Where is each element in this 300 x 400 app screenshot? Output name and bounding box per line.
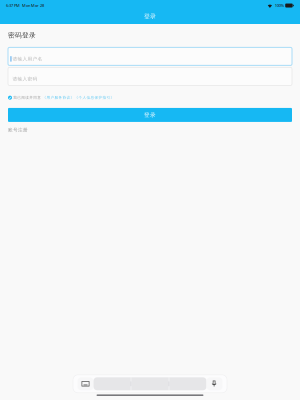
staticText: 登录 (144, 13, 156, 20)
button[interactable]: 我已阅读并同意 (0, 85, 300, 100)
staticText: 请输入密码 (12, 76, 37, 82)
staticText: 《用户服务协议》《个人信息保护指引》 (42, 95, 114, 100)
button[interactable]: 账号注册 (0, 122, 28, 133)
staticText: 密码登录 (8, 31, 36, 39)
staticText: 我已阅读并同意 (13, 95, 41, 100)
staticText: Mon Mar 28 (20, 3, 44, 8)
button[interactable]: Show keyboard (77, 377, 93, 390)
staticText: 请输入用户名 (13, 56, 43, 62)
button[interactable]: 登录 (0, 100, 300, 122)
button[interactable]: Dictation (206, 377, 222, 390)
staticText: 账号注册 (8, 127, 28, 133)
staticText: 6:37 PM (6, 3, 20, 8)
staticText: 登录 (144, 111, 156, 118)
staticText: 100% (275, 3, 284, 8)
